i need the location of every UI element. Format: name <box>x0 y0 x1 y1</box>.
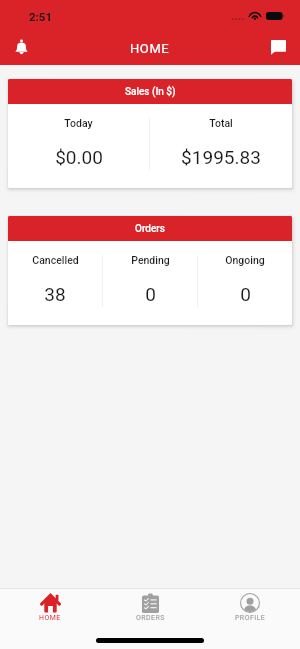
button[interactable]: Notifications <box>5 31 37 63</box>
button[interactable]: Messages <box>262 31 294 63</box>
button[interactable]: PROFILE <box>200 589 300 634</box>
staticText: Today <box>64 117 93 129</box>
staticText: Sales (In $) <box>125 86 176 98</box>
button[interactable]: Orders <box>8 216 292 325</box>
staticText: Pending <box>131 254 170 266</box>
staticText: HOME <box>130 41 170 56</box>
staticText: ORDERS <box>136 614 165 622</box>
staticText: 0 <box>145 283 156 305</box>
staticText: Ongoing <box>225 254 265 266</box>
staticText: 0 <box>240 283 251 305</box>
staticText: Total <box>209 117 233 129</box>
button[interactable]: HOME <box>0 589 100 634</box>
staticText: $0.00 <box>55 146 103 168</box>
staticText: Orders <box>135 223 166 235</box>
staticText: PROFILE <box>235 614 266 622</box>
staticText: 2:51 <box>29 10 53 23</box>
staticText: Cancelled <box>32 254 79 266</box>
button[interactable]: Sales (In $) <box>8 79 292 188</box>
staticText: HOME <box>39 614 61 622</box>
staticText: 38 <box>44 283 66 305</box>
staticText: $1995.83 <box>181 146 261 168</box>
button[interactable]: ORDERS <box>100 589 200 634</box>
